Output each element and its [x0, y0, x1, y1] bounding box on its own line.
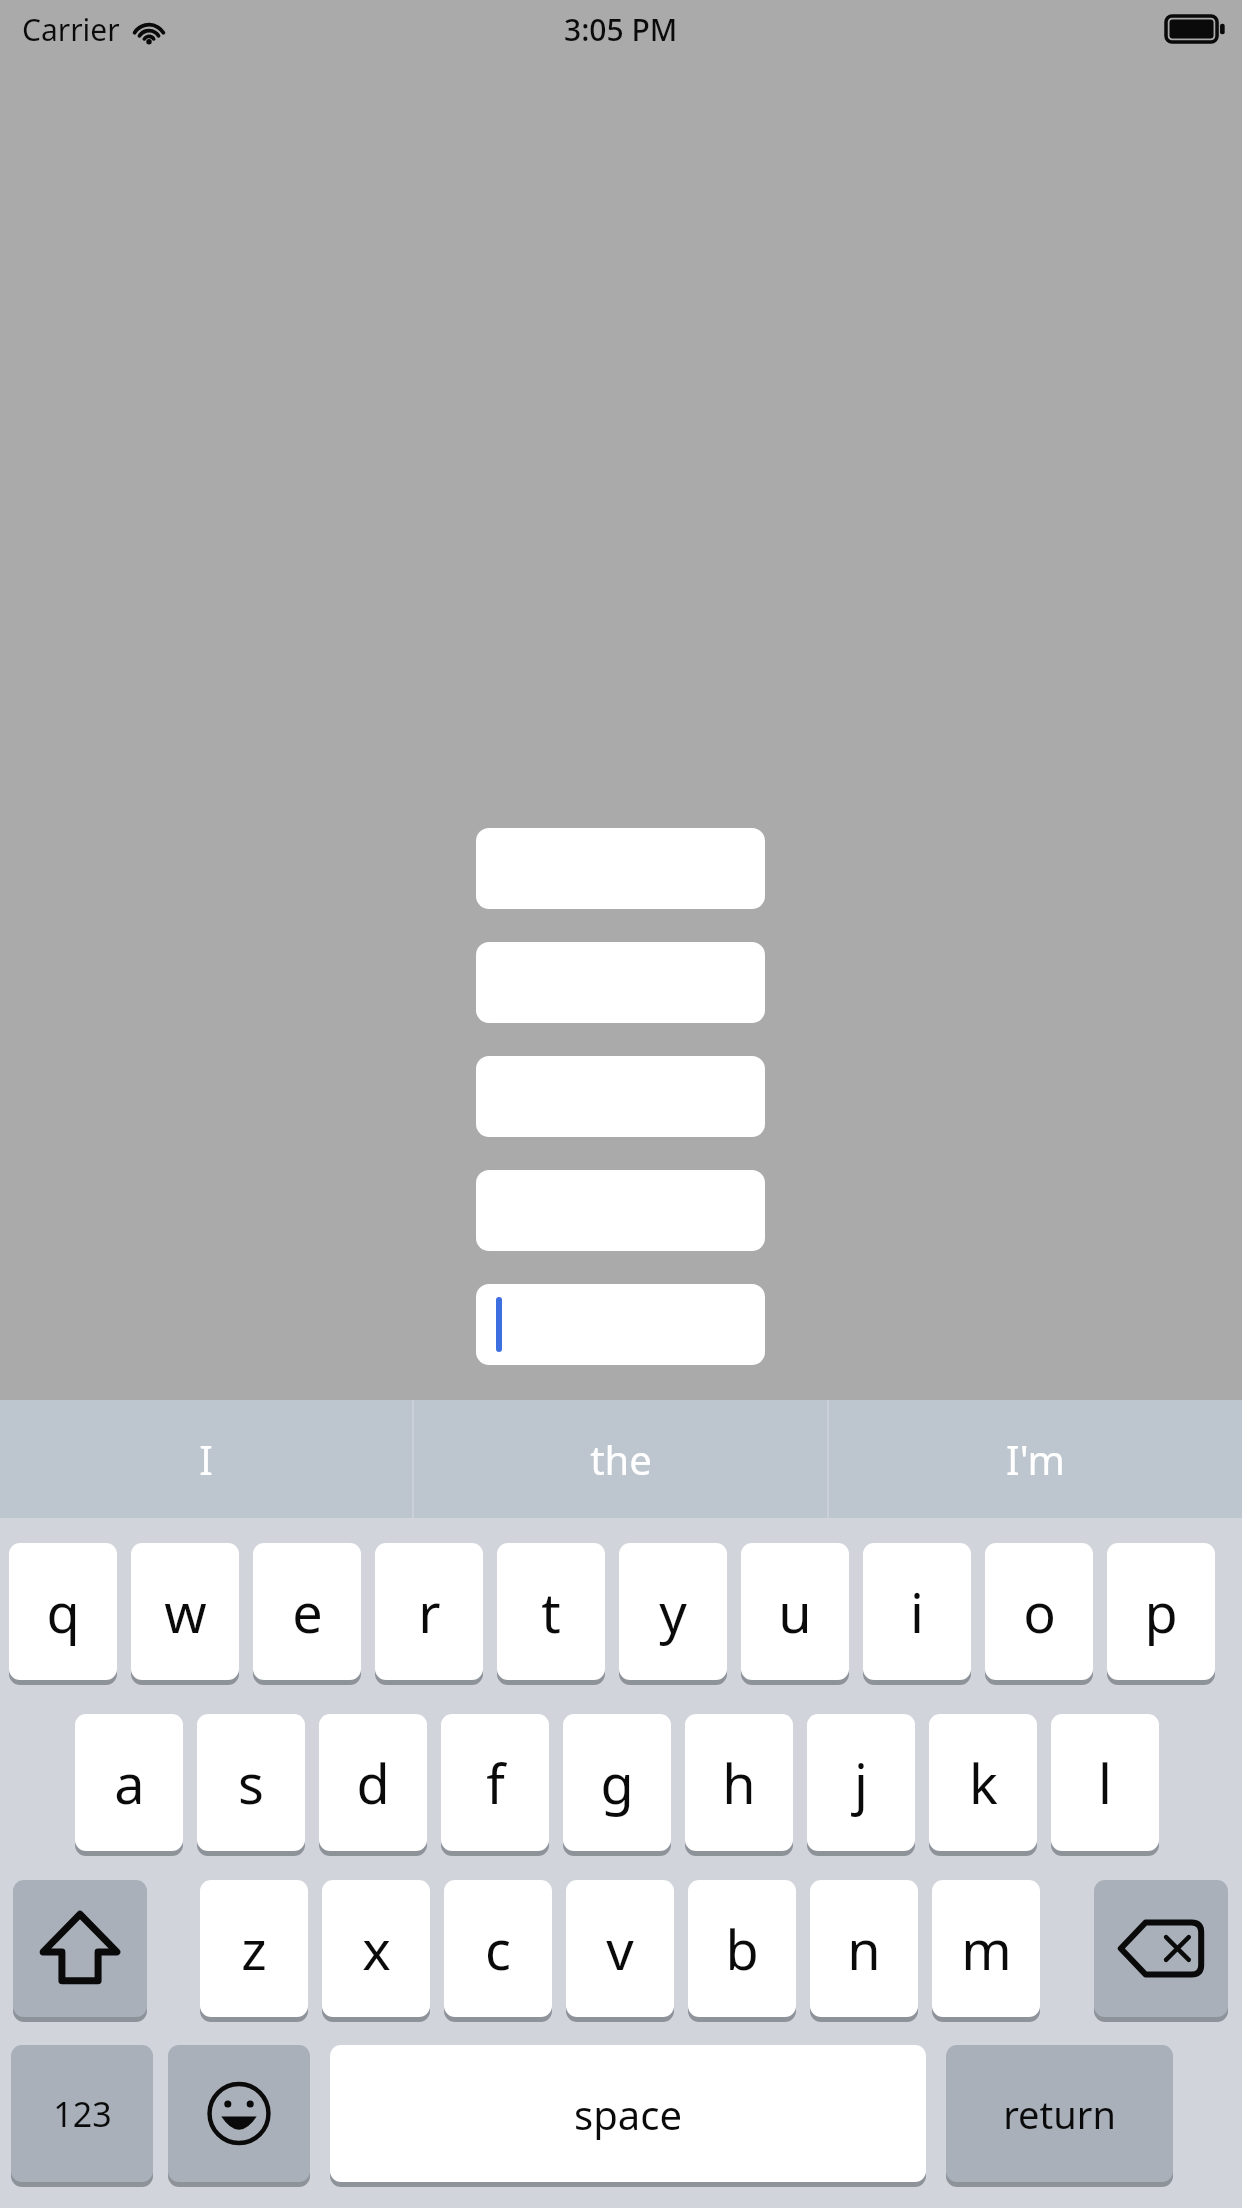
- staticText: e: [292, 1575, 323, 1649]
- button[interactable]: c: [444, 1880, 552, 2017]
- button[interactable]: Backspace: [1094, 1880, 1228, 2017]
- button[interactable]: return: [946, 2045, 1173, 2182]
- staticText: 123: [53, 2091, 112, 2137]
- button[interactable]: k: [929, 1714, 1037, 1851]
- button[interactable]: s: [197, 1714, 305, 1851]
- button[interactable]: r: [375, 1543, 483, 1680]
- button[interactable]: x: [322, 1880, 430, 2017]
- button[interactable]: [476, 1056, 765, 1137]
- staticText: h: [722, 1746, 756, 1820]
- button[interactable]: a: [75, 1714, 183, 1851]
- button[interactable]: [476, 1284, 765, 1365]
- button[interactable]: d: [319, 1714, 427, 1851]
- button[interactable]: h: [685, 1714, 793, 1851]
- button[interactable]: q: [9, 1543, 117, 1680]
- button[interactable]: o: [985, 1543, 1093, 1680]
- button[interactable]: m: [932, 1880, 1040, 2017]
- staticText: n: [847, 1912, 881, 1986]
- staticText: c: [485, 1912, 511, 1986]
- staticText: k: [969, 1746, 998, 1820]
- staticText: I'm: [1006, 1432, 1065, 1486]
- button[interactable]: l: [1051, 1714, 1159, 1851]
- button[interactable]: e: [253, 1543, 361, 1680]
- staticText: d: [356, 1746, 390, 1820]
- button[interactable]: w: [131, 1543, 239, 1680]
- button[interactable]: Shift: [13, 1880, 147, 2017]
- button[interactable]: z: [200, 1880, 308, 2017]
- staticText: Carrier: [22, 9, 120, 50]
- staticText: y: [659, 1575, 687, 1649]
- staticText: t: [541, 1575, 561, 1649]
- button[interactable]: Emoji keyboard: [168, 2045, 310, 2182]
- button[interactable]: n: [810, 1880, 918, 2017]
- button[interactable]: [476, 942, 765, 1023]
- staticText: the: [590, 1432, 652, 1486]
- staticText: v: [606, 1912, 634, 1986]
- staticText: a: [114, 1746, 145, 1820]
- staticText: u: [778, 1575, 812, 1649]
- button[interactable]: p: [1107, 1543, 1215, 1680]
- staticText: m: [961, 1912, 1012, 1986]
- staticText: w: [164, 1575, 207, 1649]
- button[interactable]: [476, 1170, 765, 1251]
- button[interactable]: I'm: [829, 1400, 1242, 1518]
- staticText: r: [418, 1575, 441, 1649]
- staticText: j: [854, 1746, 868, 1820]
- button[interactable]: f: [441, 1714, 549, 1851]
- button[interactable]: [476, 828, 765, 909]
- staticText: I: [199, 1432, 213, 1486]
- button[interactable]: j: [807, 1714, 915, 1851]
- staticText: f: [486, 1746, 505, 1820]
- button[interactable]: b: [688, 1880, 796, 2017]
- button[interactable]: I: [0, 1400, 412, 1518]
- staticText: i: [910, 1575, 924, 1649]
- button[interactable]: space: [330, 2045, 926, 2182]
- button[interactable]: v: [566, 1880, 674, 2017]
- button[interactable]: g: [563, 1714, 671, 1851]
- button[interactable]: the: [414, 1400, 827, 1518]
- staticText: o: [1023, 1575, 1056, 1649]
- staticText: return: [1003, 2088, 1116, 2140]
- button[interactable]: u: [741, 1543, 849, 1680]
- button[interactable]: t: [497, 1543, 605, 1680]
- button[interactable]: 123: [11, 2045, 153, 2182]
- staticText: b: [725, 1912, 759, 1986]
- button[interactable]: y: [619, 1543, 727, 1680]
- staticText: space: [574, 2087, 682, 2141]
- staticText: g: [600, 1746, 634, 1820]
- button[interactable]: i: [863, 1543, 971, 1680]
- staticText: x: [362, 1912, 391, 1986]
- staticText: 3:05 PM: [564, 9, 678, 50]
- staticText: p: [1144, 1575, 1178, 1649]
- staticText: q: [46, 1575, 80, 1649]
- staticText: s: [238, 1746, 264, 1820]
- staticText: z: [241, 1912, 267, 1986]
- staticText: l: [1098, 1746, 1112, 1820]
